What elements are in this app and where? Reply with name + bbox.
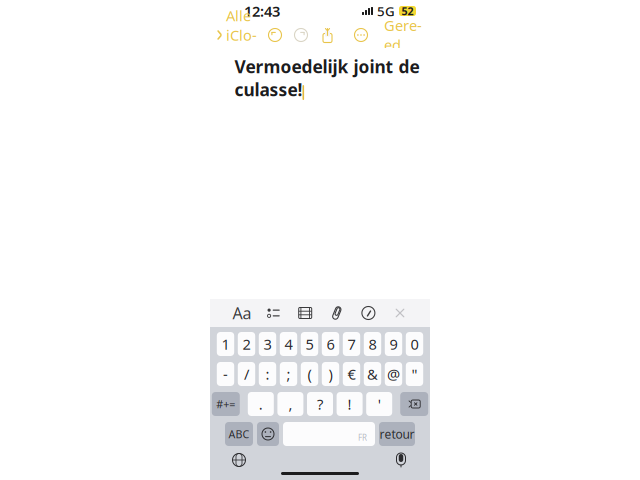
staticText: Alle iCloud bbox=[226, 6, 257, 64]
staticText: - bbox=[223, 364, 228, 384]
staticText: culasse! bbox=[234, 78, 302, 101]
staticText: 2 bbox=[242, 334, 250, 354]
button[interactable]: #+= bbox=[212, 392, 240, 416]
staticText: € bbox=[347, 364, 355, 384]
button[interactable]: 0 bbox=[406, 332, 423, 356]
button[interactable]: 3 bbox=[259, 332, 276, 356]
button[interactable]: . bbox=[248, 392, 274, 416]
staticText: ) bbox=[328, 364, 332, 384]
button[interactable]: 4 bbox=[280, 332, 297, 356]
button[interactable]: Emoji bbox=[257, 422, 279, 446]
staticText: 4 bbox=[284, 334, 292, 354]
button[interactable]: / bbox=[238, 362, 255, 386]
staticText: retour bbox=[379, 426, 414, 442]
staticText: & bbox=[367, 364, 378, 384]
staticText: 9 bbox=[389, 334, 397, 354]
button[interactable]: ( bbox=[301, 362, 318, 386]
button[interactable]: ) bbox=[322, 362, 339, 386]
staticText: ! bbox=[348, 394, 352, 414]
staticText: 6 bbox=[326, 334, 334, 354]
button[interactable]: @ bbox=[385, 362, 402, 386]
button[interactable]: Gereed bbox=[384, 11, 422, 58]
button[interactable]: Text formatting bbox=[232, 302, 252, 324]
button[interactable]: Table bbox=[295, 302, 315, 324]
button[interactable]: Checklist bbox=[264, 302, 284, 324]
button[interactable]: Dictate bbox=[390, 449, 412, 471]
staticText: . bbox=[259, 394, 263, 414]
button[interactable]: Undo bbox=[266, 26, 284, 44]
button[interactable]: ABC bbox=[225, 422, 253, 446]
staticText: ? bbox=[317, 394, 323, 414]
button[interactable]: 9 bbox=[385, 332, 402, 356]
staticText: Aa bbox=[232, 302, 251, 324]
staticText: ( bbox=[307, 364, 311, 384]
button[interactable]: Close keyboard bbox=[390, 302, 410, 324]
button[interactable]: retour bbox=[379, 422, 415, 446]
button[interactable]: & bbox=[364, 362, 381, 386]
staticText: 8 bbox=[368, 334, 376, 354]
button[interactable]: ! bbox=[337, 392, 363, 416]
staticText: 3 bbox=[263, 334, 271, 354]
button[interactable]: 7 bbox=[343, 332, 360, 356]
staticText: 1 bbox=[221, 334, 229, 354]
staticText: ; bbox=[286, 364, 290, 384]
button[interactable]: Share bbox=[319, 25, 336, 45]
staticText: ABC bbox=[228, 427, 249, 441]
button[interactable]: ' bbox=[366, 392, 392, 416]
button[interactable]: Markup bbox=[358, 302, 378, 324]
staticText: @ bbox=[387, 364, 400, 384]
staticText: 5 bbox=[305, 334, 313, 354]
staticText: : bbox=[265, 364, 269, 384]
button[interactable]: " bbox=[406, 362, 423, 386]
button[interactable]: More bbox=[352, 26, 370, 44]
staticText: Vermoedelijk joint de bbox=[234, 55, 419, 78]
button[interactable]: , bbox=[277, 392, 303, 416]
staticText: 12:43 bbox=[244, 1, 280, 21]
staticText: " bbox=[411, 364, 417, 384]
button[interactable]: 5 bbox=[301, 332, 318, 356]
staticText: , bbox=[288, 394, 292, 414]
button[interactable]: 8 bbox=[364, 332, 381, 356]
button[interactable]: 6 bbox=[322, 332, 339, 356]
button[interactable]: Delete bbox=[400, 392, 428, 416]
staticText: Gereed bbox=[384, 15, 422, 54]
button[interactable]: - bbox=[217, 362, 234, 386]
staticText: ' bbox=[378, 394, 381, 414]
staticText: FR bbox=[358, 432, 367, 443]
button[interactable]: ? bbox=[307, 392, 333, 416]
button[interactable]: ; bbox=[280, 362, 297, 386]
button[interactable]: 1 bbox=[217, 332, 234, 356]
button[interactable]: € bbox=[343, 362, 360, 386]
button[interactable]: Attach bbox=[327, 302, 347, 324]
staticText: #+= bbox=[216, 397, 235, 411]
staticText: 0 bbox=[410, 334, 418, 354]
button[interactable]: Space bbox=[283, 422, 375, 446]
button[interactable]: : bbox=[259, 362, 276, 386]
staticText: / bbox=[244, 364, 249, 384]
button[interactable]: Redo bbox=[292, 26, 310, 44]
staticText: 52 bbox=[401, 4, 413, 18]
button[interactable]: 2 bbox=[238, 332, 255, 356]
staticText: 5G bbox=[377, 2, 395, 20]
staticText: 7 bbox=[347, 334, 355, 354]
button[interactable]: Alle iCloud bbox=[216, 2, 257, 68]
button[interactable]: Switch keyboard bbox=[228, 449, 250, 471]
